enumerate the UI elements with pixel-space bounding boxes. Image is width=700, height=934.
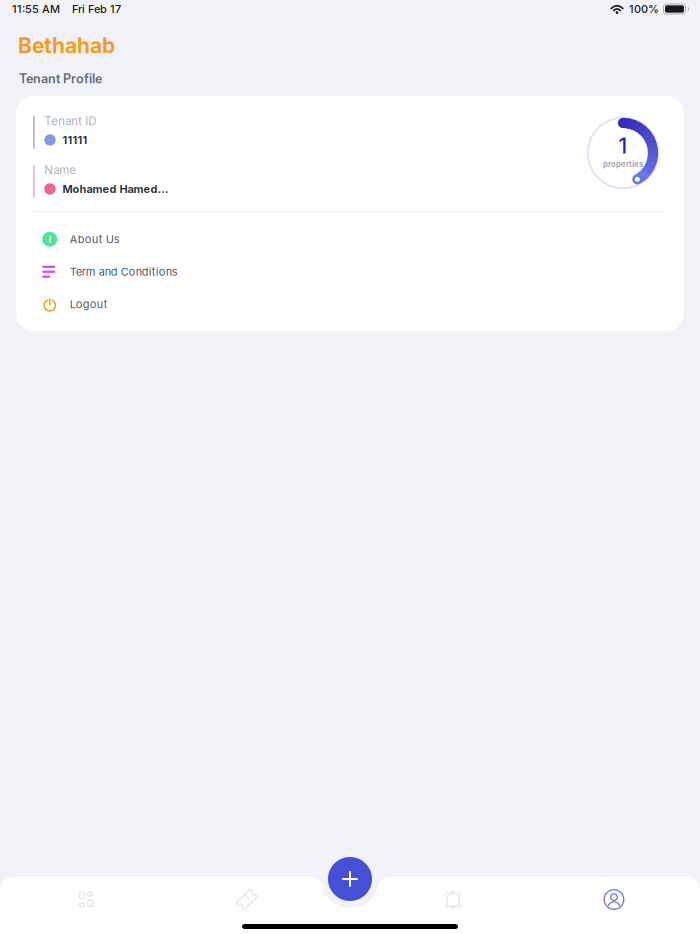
staticText: Bethahab — [18, 33, 115, 58]
button[interactable]: Profile — [528, 877, 700, 922]
staticText: i — [49, 234, 51, 245]
button[interactable]: Logout — [16, 288, 684, 320]
button[interactable]: Term and Conditions — [16, 255, 684, 288]
staticText: 11111 — [62, 133, 87, 147]
staticText: Logout — [70, 298, 108, 311]
staticText: 11:55 AM — [12, 2, 60, 16]
button[interactable]: i — [16, 223, 684, 255]
button[interactable]: Add — [328, 857, 372, 901]
staticText: Tenant ID — [44, 114, 96, 128]
staticText: Tenant Profile — [19, 71, 102, 86]
staticText: properties — [603, 160, 643, 169]
staticText: About Us — [70, 233, 120, 246]
staticText: Mohamed Hamed… — [62, 182, 168, 196]
staticText: Name — [44, 163, 76, 177]
staticText: 1 — [618, 133, 627, 159]
staticText: Fri Feb 17 — [72, 2, 121, 16]
staticText: Term and Conditions — [70, 265, 178, 278]
staticText: 100% — [629, 2, 659, 16]
